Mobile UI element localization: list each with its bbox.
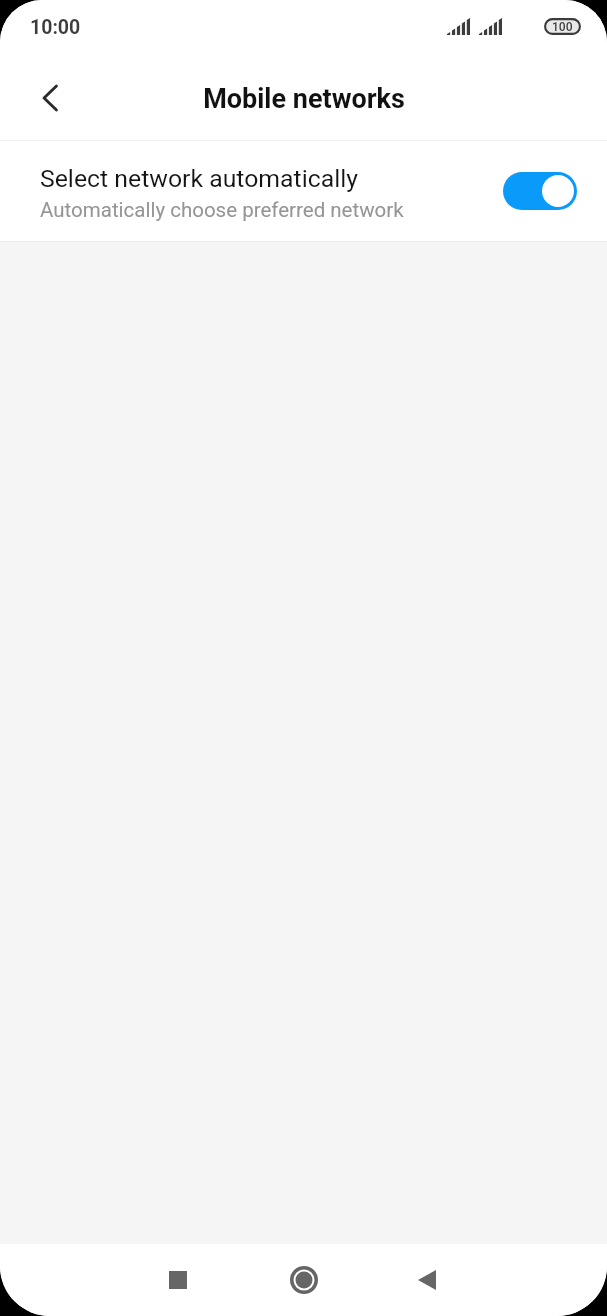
button[interactable]: Select network automatically [0, 141, 607, 241]
staticText: Automatically choose preferred network [40, 198, 404, 222]
button[interactable]: Back [387, 1244, 467, 1316]
staticText: 100 [552, 20, 573, 34]
staticText: Select network automatically [40, 164, 358, 193]
button[interactable]: Select network automatically [503, 172, 577, 210]
staticText: 10:00 [30, 16, 81, 39]
button[interactable]: Back [19, 66, 83, 130]
button[interactable]: Home [264, 1244, 344, 1316]
button[interactable]: Recent apps [138, 1244, 218, 1316]
staticText: Mobile networks [203, 83, 405, 115]
